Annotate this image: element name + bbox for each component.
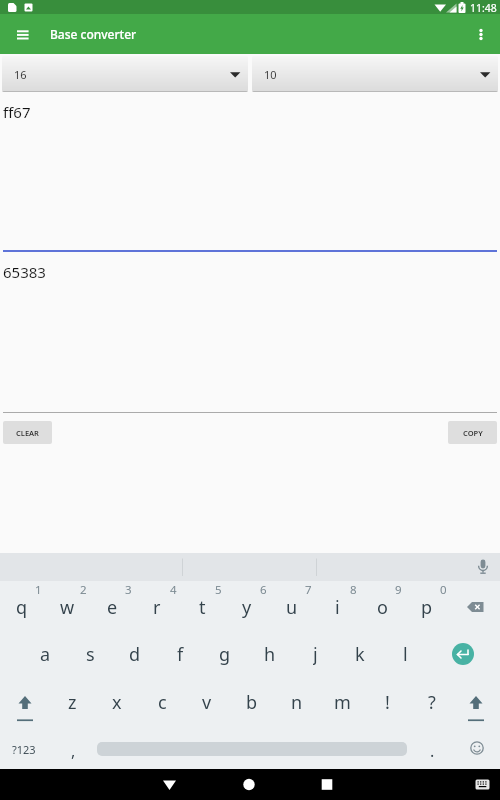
button[interactable] — [11, 24, 35, 44]
staticText: q — [16, 595, 28, 619]
button[interactable]: l — [385, 642, 425, 666]
staticText: w — [60, 595, 75, 619]
button[interactable]: m — [322, 690, 362, 714]
staticText: . — [430, 740, 435, 762]
button[interactable]: j — [295, 642, 335, 666]
staticText: 5 — [215, 582, 222, 598]
button[interactable]: 1 — [27, 582, 49, 598]
button[interactable]: CLEAR — [3, 421, 52, 444]
staticText: k — [355, 642, 365, 666]
staticText: y — [242, 595, 252, 619]
button[interactable] — [234, 770, 264, 799]
staticText: n — [291, 690, 303, 714]
button[interactable]: 16 — [2, 56, 248, 92]
button[interactable]: h — [250, 642, 290, 666]
staticText: j — [313, 642, 318, 666]
button[interactable]: 2 — [72, 582, 94, 598]
button[interactable]: g — [205, 642, 245, 666]
button[interactable]: s — [70, 642, 110, 666]
button[interactable]: k — [340, 642, 380, 666]
button[interactable]: , — [53, 739, 93, 763]
button[interactable]: v — [187, 690, 227, 714]
button[interactable] — [312, 770, 342, 799]
staticText: 6 — [260, 582, 267, 598]
staticText: 8 — [350, 582, 357, 598]
button[interactable]: d — [115, 642, 155, 666]
staticText: a — [40, 642, 51, 666]
staticText: ff67 — [3, 102, 31, 122]
button[interactable]: u — [272, 595, 312, 619]
button[interactable] — [461, 689, 491, 725]
button[interactable]: f — [160, 642, 200, 666]
button[interactable]: a — [25, 642, 65, 666]
button[interactable]: . — [412, 739, 452, 763]
button[interactable]: 6 — [252, 582, 274, 598]
staticText: 16 — [14, 67, 27, 82]
button[interactable]: z — [52, 690, 92, 714]
button[interactable]: x — [97, 690, 137, 714]
staticText: COPY — [463, 428, 483, 438]
staticText: g — [219, 642, 231, 666]
staticText: u — [286, 595, 298, 619]
button[interactable]: w — [47, 595, 87, 619]
button[interactable] — [452, 643, 474, 665]
button[interactable]: ? — [412, 690, 452, 714]
button[interactable] — [10, 689, 40, 725]
button[interactable]: COPY — [448, 421, 497, 444]
button[interactable]: 5 — [207, 582, 229, 598]
button[interactable] — [155, 770, 184, 799]
staticText: e — [107, 595, 118, 619]
button[interactable]: q — [2, 595, 42, 619]
staticText: d — [129, 642, 141, 666]
button[interactable] — [465, 736, 489, 760]
staticText: s — [86, 642, 95, 666]
button[interactable]: ! — [367, 690, 407, 714]
staticText: r — [153, 595, 161, 619]
button[interactable]: c — [142, 690, 182, 714]
button[interactable]: o — [362, 595, 402, 619]
button[interactable]: y — [227, 595, 267, 619]
staticText: ?123 — [12, 742, 36, 757]
button[interactable]: ?123 — [1, 737, 47, 761]
button[interactable]: r — [137, 595, 177, 619]
staticText: 10 — [264, 67, 277, 82]
button[interactable]: 8 — [342, 582, 364, 598]
button[interactable] — [470, 773, 496, 797]
staticText: i — [335, 595, 340, 619]
button[interactable]: 4 — [162, 582, 184, 598]
button[interactable]: 9 — [387, 582, 409, 598]
button[interactable] — [457, 595, 493, 619]
staticText: 65383 — [3, 262, 46, 282]
button[interactable]: p — [407, 595, 447, 619]
staticText: 2 — [80, 582, 87, 598]
staticText: 7 — [305, 582, 312, 598]
staticText: 3 — [125, 582, 132, 598]
staticText: z — [68, 690, 77, 714]
button[interactable]: b — [232, 690, 272, 714]
button[interactable]: n — [277, 690, 317, 714]
staticText: CLEAR — [16, 428, 39, 438]
button[interactable]: 10 — [252, 56, 498, 92]
button[interactable]: t — [182, 595, 222, 619]
staticText: f — [177, 642, 184, 666]
button[interactable] — [470, 22, 492, 46]
staticText: 9 — [395, 582, 402, 598]
button[interactable]: i — [317, 595, 357, 619]
button[interactable]: 3 — [117, 582, 139, 598]
staticText: p — [421, 595, 433, 619]
staticText: ? — [428, 690, 436, 714]
staticText: x — [112, 690, 122, 714]
staticText: 11:48 — [470, 1, 497, 15]
button[interactable]: 0 — [432, 582, 454, 598]
staticText: 4 — [170, 582, 177, 598]
staticText: c — [158, 690, 167, 714]
staticText: ! — [385, 690, 390, 714]
button[interactable]: e — [92, 595, 132, 619]
staticText: v — [202, 690, 212, 714]
button[interactable]: 7 — [297, 582, 319, 598]
staticText: 1 — [35, 582, 42, 598]
staticText: Base converter — [50, 26, 137, 42]
staticText: b — [246, 690, 258, 714]
staticText: m — [334, 690, 351, 714]
